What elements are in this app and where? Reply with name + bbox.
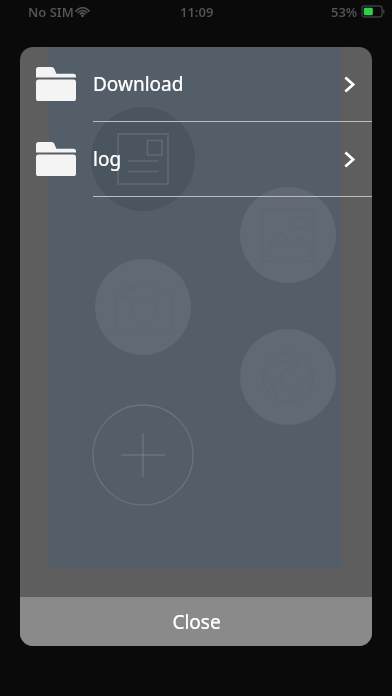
staticText: Download xyxy=(93,71,184,97)
button[interactable]: log xyxy=(20,122,372,196)
staticText: Close xyxy=(172,609,221,635)
staticText: 53% xyxy=(331,3,358,21)
button[interactable]: Close xyxy=(20,597,372,646)
staticText: No SIM xyxy=(28,3,74,21)
button[interactable]: Download xyxy=(20,47,372,121)
staticText: log xyxy=(93,146,122,172)
staticText: 11:09 xyxy=(180,3,214,21)
